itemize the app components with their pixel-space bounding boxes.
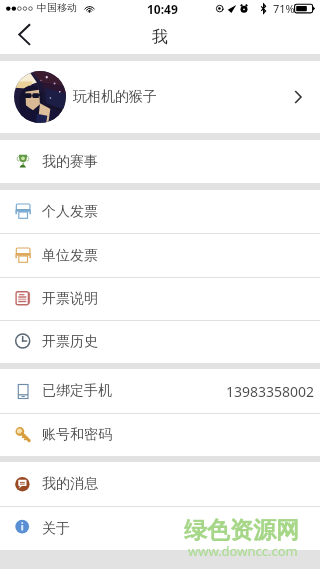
staticText: 关于 (42, 520, 70, 538)
button[interactable]: 玩相机的猴子 (0, 61, 320, 133)
button[interactable]: 我的赛事 (0, 140, 320, 183)
button[interactable]: 开票历史 (0, 321, 320, 363)
staticText: 开票说明 (42, 290, 98, 308)
button[interactable]: 单位发票 (0, 234, 320, 277)
button[interactable]: 已绑定手机 (0, 369, 320, 413)
staticText: 71% (273, 1, 295, 16)
button[interactable]: 关于 (0, 507, 320, 550)
staticText: 13983358002 (226, 382, 315, 401)
staticText: 玩相机的猴子 (73, 88, 157, 106)
staticText: 账号和密码 (42, 426, 112, 444)
staticText: 开票历史 (42, 333, 98, 351)
staticText: 我 (152, 27, 168, 47)
staticText: 绿色资源网 (184, 516, 299, 545)
button[interactable]: Back (0, 20, 48, 54)
button[interactable]: 开票说明 (0, 278, 320, 320)
staticText: 我的赛事 (42, 153, 98, 171)
staticText: 单位发票 (42, 247, 98, 265)
staticText: 中国移动 (37, 1, 77, 14)
button[interactable]: 个人发票 (0, 190, 320, 233)
staticText: www.downcc.com (188, 542, 298, 560)
staticText: 10:49 (147, 1, 178, 17)
staticText: 我的消息 (42, 475, 98, 493)
staticText: 已绑定手机 (42, 382, 112, 400)
staticText: 个人发票 (42, 203, 98, 221)
button[interactable]: 我的消息 (0, 462, 320, 506)
button[interactable]: 账号和密码 (0, 414, 320, 456)
